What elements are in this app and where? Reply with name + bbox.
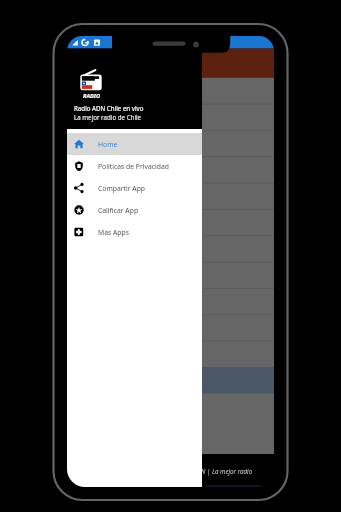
- staticText: Compartir App: [98, 184, 146, 193]
- staticText: Políticas de Privacidad: [98, 162, 169, 171]
- staticText: Calificar App: [98, 206, 139, 215]
- staticText: Radio ADN Chile en vivo: [74, 104, 144, 112]
- staticText: La mejor radio de Chile: [74, 113, 142, 121]
- staticText: Home: [98, 140, 118, 149]
- button[interactable]: Políticas de Privacidad: [67, 155, 202, 177]
- staticText: Más Apps: [98, 228, 129, 237]
- staticText: Radio ADN | La mejor radio: [176, 467, 253, 475]
- button[interactable]: Home: [67, 133, 202, 155]
- button[interactable]: Más Apps: [67, 221, 202, 243]
- button[interactable]: Compartir App: [67, 177, 202, 199]
- button[interactable]: Calificar App: [67, 199, 202, 221]
- staticText: RADIO: [83, 92, 100, 100]
